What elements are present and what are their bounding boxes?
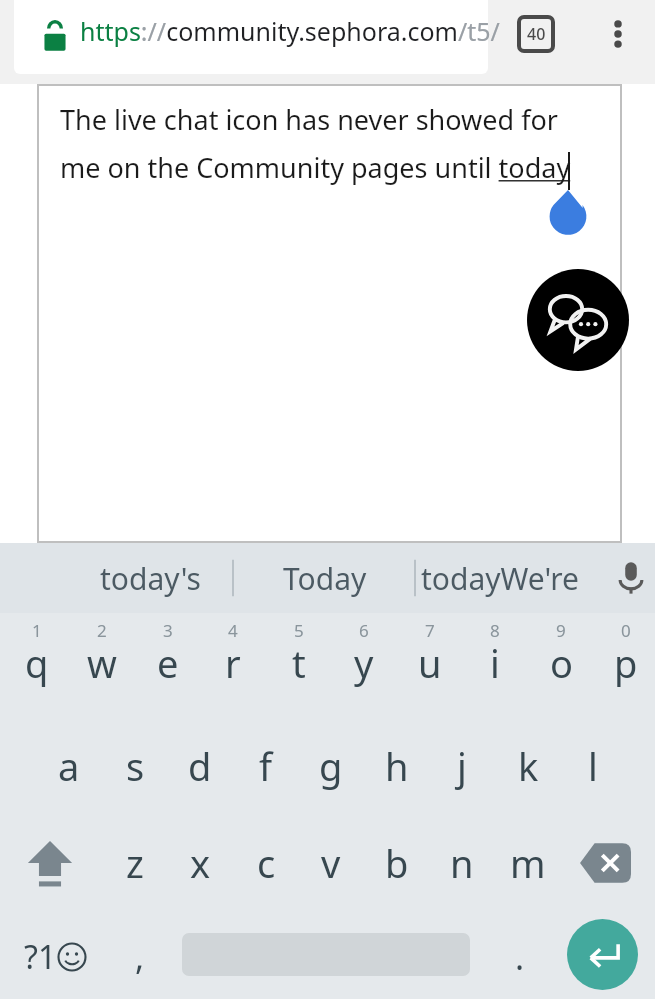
button[interactable]: f [233,718,299,814]
button[interactable]: d [167,718,233,814]
button[interactable]: todayWe're [410,543,590,613]
button[interactable]: m [495,815,561,911]
staticText: o [550,637,573,689]
staticText: h [385,740,409,792]
staticText: r [225,637,241,689]
other: Secure connection [38,18,72,52]
button[interactable]: The live chat icon has never showed for … [38,85,621,542]
staticText: Today [283,558,367,599]
button[interactable]: Voice input [596,543,655,613]
staticText: j [457,740,467,792]
button[interactable]: v [298,815,364,911]
button[interactable]: l [560,718,626,814]
button[interactable]: . [485,915,555,999]
staticText: p [614,637,638,689]
button[interactable]: b [364,815,430,911]
button[interactable]: , [105,915,175,999]
staticText: 3 [163,619,173,642]
button[interactable]: 3 [135,615,201,711]
button[interactable]: today's [60,543,240,613]
staticText: , [135,934,145,980]
button[interactable]: Enter [567,919,638,990]
button[interactable]: 8 [462,615,528,711]
staticText: 6 [359,619,369,642]
other: Text cursor handle [548,190,588,230]
button[interactable]: k [495,718,561,814]
staticText: e [157,637,179,689]
button[interactable]: 5 [266,615,332,711]
staticText: 1 [32,619,42,642]
staticText: u [418,637,442,689]
staticText: s [126,740,145,792]
button[interactable]: Shift [0,815,100,911]
button[interactable]: 9 [528,615,594,711]
staticText: c [257,837,276,889]
button[interactable]: 6 [331,615,397,711]
button[interactable]: a [36,718,102,814]
staticText: 0 [621,619,631,642]
staticText: 2 [97,619,107,642]
button[interactable]: Switch tabs, 40 open [518,16,554,52]
button[interactable]: 1 [4,615,70,711]
button[interactable]: x [167,815,233,911]
button[interactable]: Today [235,543,415,613]
staticText: y [354,637,374,689]
staticText: ?1 [24,935,57,979]
button[interactable]: Live chat [527,269,629,371]
button[interactable]: s [102,718,168,814]
button[interactable]: 2 [69,615,135,711]
staticText: The live chat icon has never showed for … [60,101,571,186]
staticText: f [259,740,273,792]
staticText: d [188,740,212,792]
staticText: m [510,837,546,889]
staticText: q [25,637,49,689]
staticText: n [450,837,474,889]
staticText: 40 [527,23,546,45]
button[interactable]: g [298,718,364,814]
staticText: 8 [490,619,500,642]
button[interactable]: n [429,815,495,911]
staticText: k [518,740,539,792]
staticText: t [292,637,306,689]
staticText: x [190,837,211,889]
staticText: 4 [228,619,238,642]
staticText: todayWe're [421,558,580,599]
button[interactable]: More options [596,12,640,56]
button[interactable]: c [233,815,299,911]
staticText: today's [100,558,201,599]
staticText: https://community.sephora.com/t5/ [80,14,500,48]
button[interactable]: 0 [593,615,655,711]
staticText: a [58,740,80,792]
staticText: z [126,837,144,889]
button[interactable]: j [429,718,495,814]
button[interactable]: Symbols and emoji [0,915,110,999]
staticText: l [588,740,598,792]
staticText: 5 [294,619,304,642]
staticText: 7 [425,619,435,642]
staticText: w [87,637,117,689]
staticText: i [490,637,500,689]
button[interactable]: h [364,718,430,814]
staticText: . [515,934,525,980]
staticText: b [385,837,409,889]
button[interactable]: 7 [397,615,463,711]
staticText: v [321,837,341,889]
button[interactable]: Backspace [555,815,655,911]
button[interactable]: z [102,815,168,911]
button[interactable]: 4 [200,615,266,711]
button[interactable] [14,0,488,74]
staticText: 9 [556,619,566,642]
staticText: g [319,740,343,792]
